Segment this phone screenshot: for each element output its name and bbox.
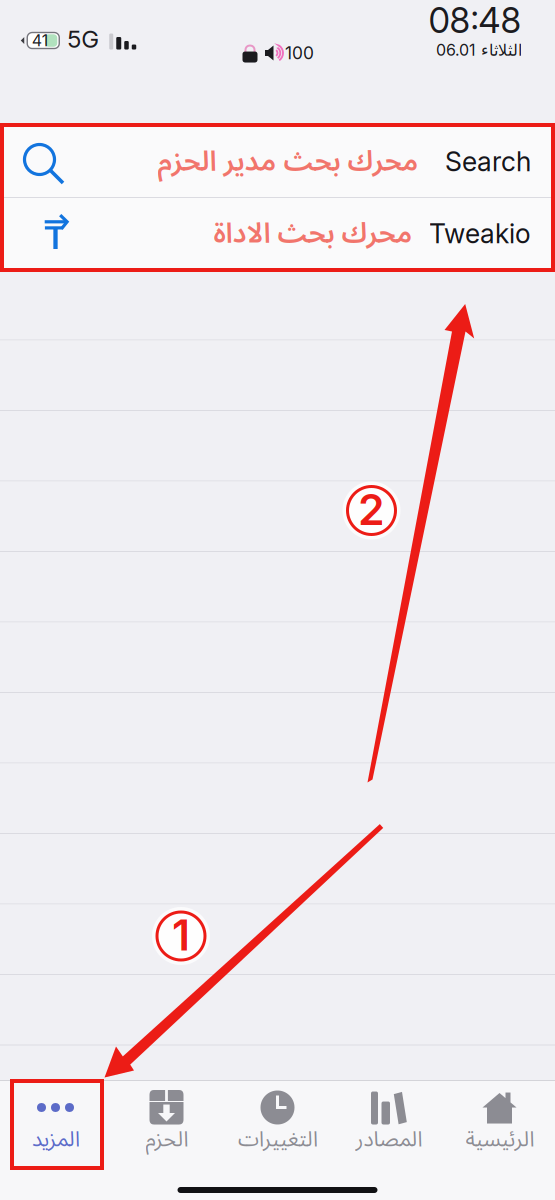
staticText: 5G — [67, 24, 99, 53]
staticText: 100 — [285, 42, 314, 63]
staticText: 1 — [172, 909, 190, 961]
staticText: الثلاثاء 06.01 — [435, 40, 521, 60]
button[interactable]: Tweakio — [0, 198, 555, 269]
staticText: المصادر — [355, 1117, 422, 1162]
staticText: Search — [445, 145, 531, 178]
staticText: 41 — [32, 31, 49, 50]
staticText: 08:48 — [428, 0, 521, 41]
button[interactable]: التغييرات — [222, 1081, 333, 1169]
staticText: الحزم — [145, 1117, 188, 1162]
staticText: محرك بحث الاداة — [213, 204, 412, 263]
staticText: التغييرات — [237, 1117, 317, 1162]
button[interactable]: المزيد — [0, 1081, 111, 1169]
staticText: محرك بحث مدير الحزم — [157, 132, 418, 191]
button[interactable]: المصادر — [333, 1081, 444, 1169]
button[interactable]: الحزم — [111, 1081, 222, 1169]
staticText: المزيد — [31, 1117, 79, 1162]
staticText: 2 — [358, 484, 385, 535]
staticText: Tweakio — [429, 217, 531, 250]
staticText: الرئيسية — [465, 1117, 534, 1162]
button[interactable]: Search — [0, 126, 555, 197]
button[interactable]: الرئيسية — [444, 1081, 555, 1169]
